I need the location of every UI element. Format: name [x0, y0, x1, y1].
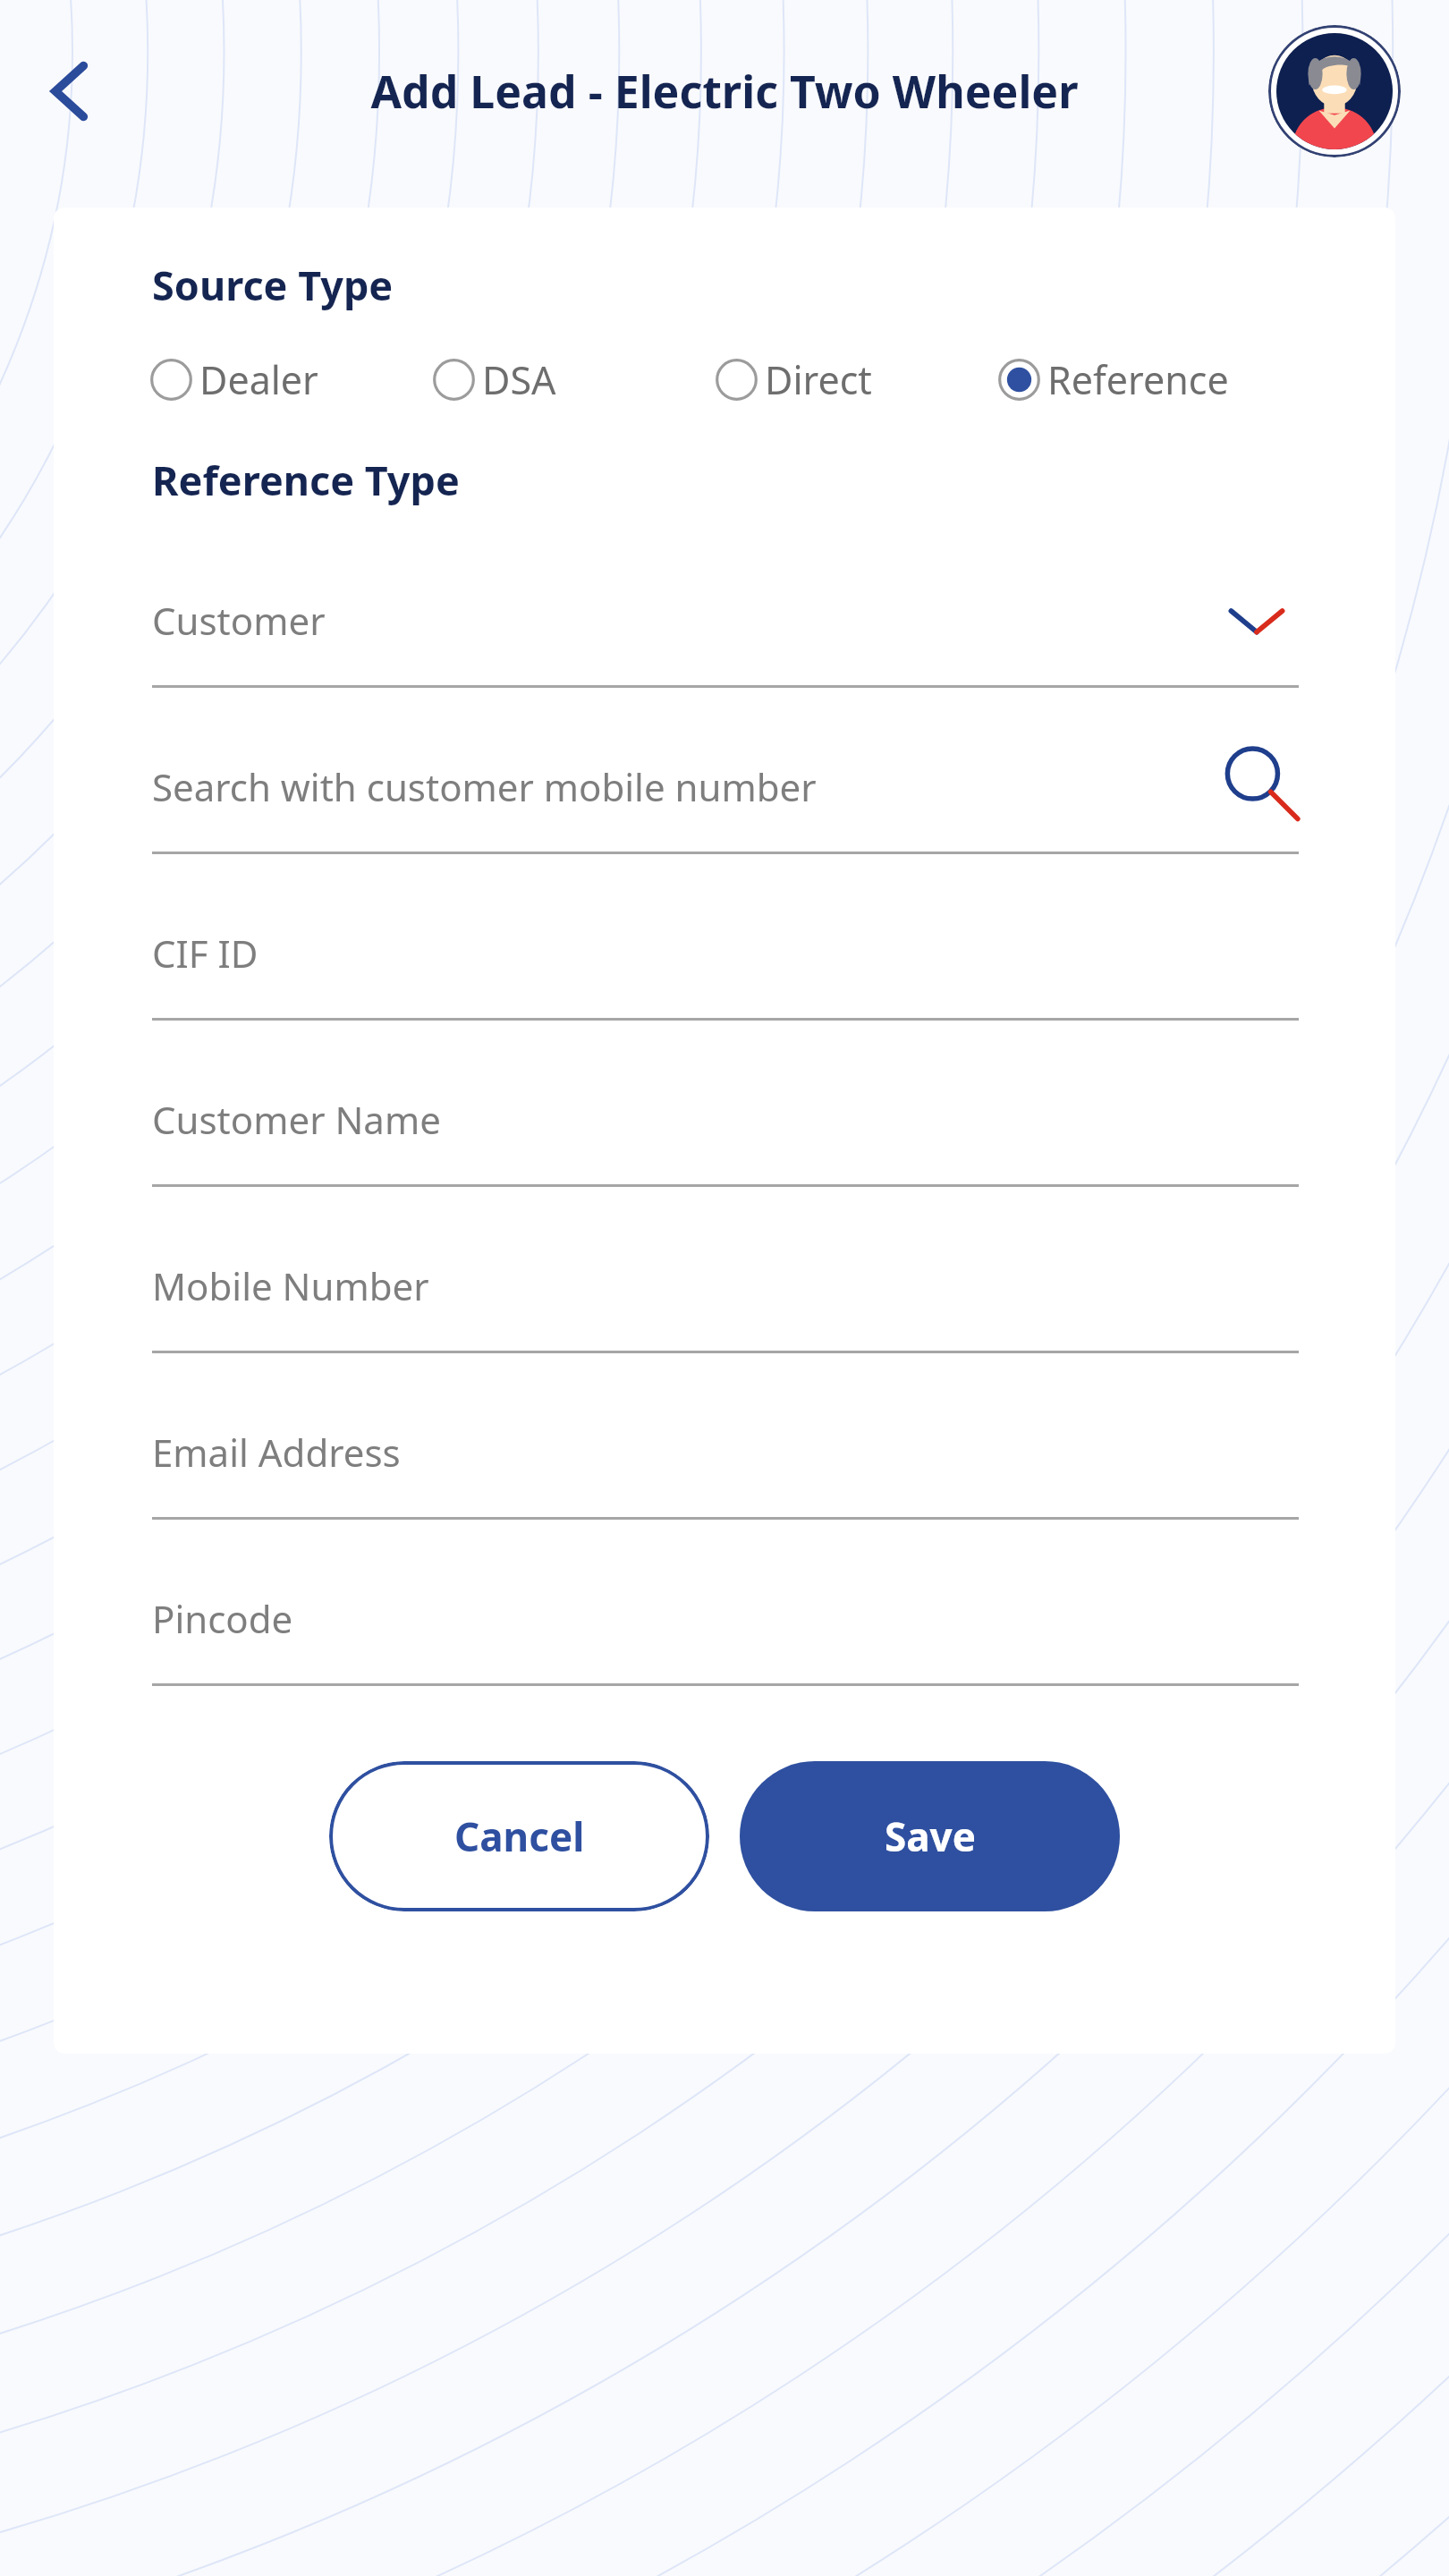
staticText: Source Type: [152, 258, 394, 312]
staticText: Mobile Number: [152, 1260, 429, 1311]
staticText: Search with customer mobile number: [152, 761, 817, 812]
staticText: Customer Name: [152, 1094, 441, 1145]
button[interactable]: CIF ID: [54, 877, 1395, 1044]
staticText: Dealer: [199, 353, 318, 406]
button[interactable]: Customer: [54, 545, 1395, 711]
button[interactable]: Save: [740, 1761, 1120, 1911]
button[interactable]: Cancel: [329, 1761, 709, 1911]
button[interactable]: Search with customer mobile number: [54, 711, 1395, 877]
button[interactable]: Email Address: [54, 1377, 1395, 1543]
button[interactable]: DSA: [433, 353, 716, 406]
button[interactable]: Open dropdown: [1207, 572, 1306, 670]
button[interactable]: Dealer: [150, 353, 433, 406]
staticText: Email Address: [152, 1427, 401, 1478]
button[interactable]: Direct: [716, 353, 998, 406]
staticText: Direct: [765, 353, 872, 406]
staticText: Reference: [1047, 353, 1229, 406]
staticText: DSA: [482, 353, 556, 406]
button[interactable]: Back: [18, 41, 118, 141]
button[interactable]: Mobile Number: [54, 1210, 1395, 1377]
button[interactable]: Customer Name: [54, 1044, 1395, 1210]
staticText: Save: [885, 1809, 976, 1863]
staticText: Customer: [152, 595, 326, 646]
staticText: Cancel: [454, 1809, 585, 1863]
staticText: Add Lead - Electric Two Wheeler: [277, 61, 1172, 122]
button[interactable]: Reference: [998, 353, 1309, 406]
staticText: CIF ID: [152, 928, 258, 979]
staticText: Reference Type: [152, 453, 460, 507]
button[interactable]: Pincode: [54, 1543, 1395, 1709]
button[interactable]: Profile: [1268, 25, 1401, 157]
staticText: Pincode: [152, 1593, 293, 1644]
button[interactable]: Search: [1209, 734, 1308, 833]
